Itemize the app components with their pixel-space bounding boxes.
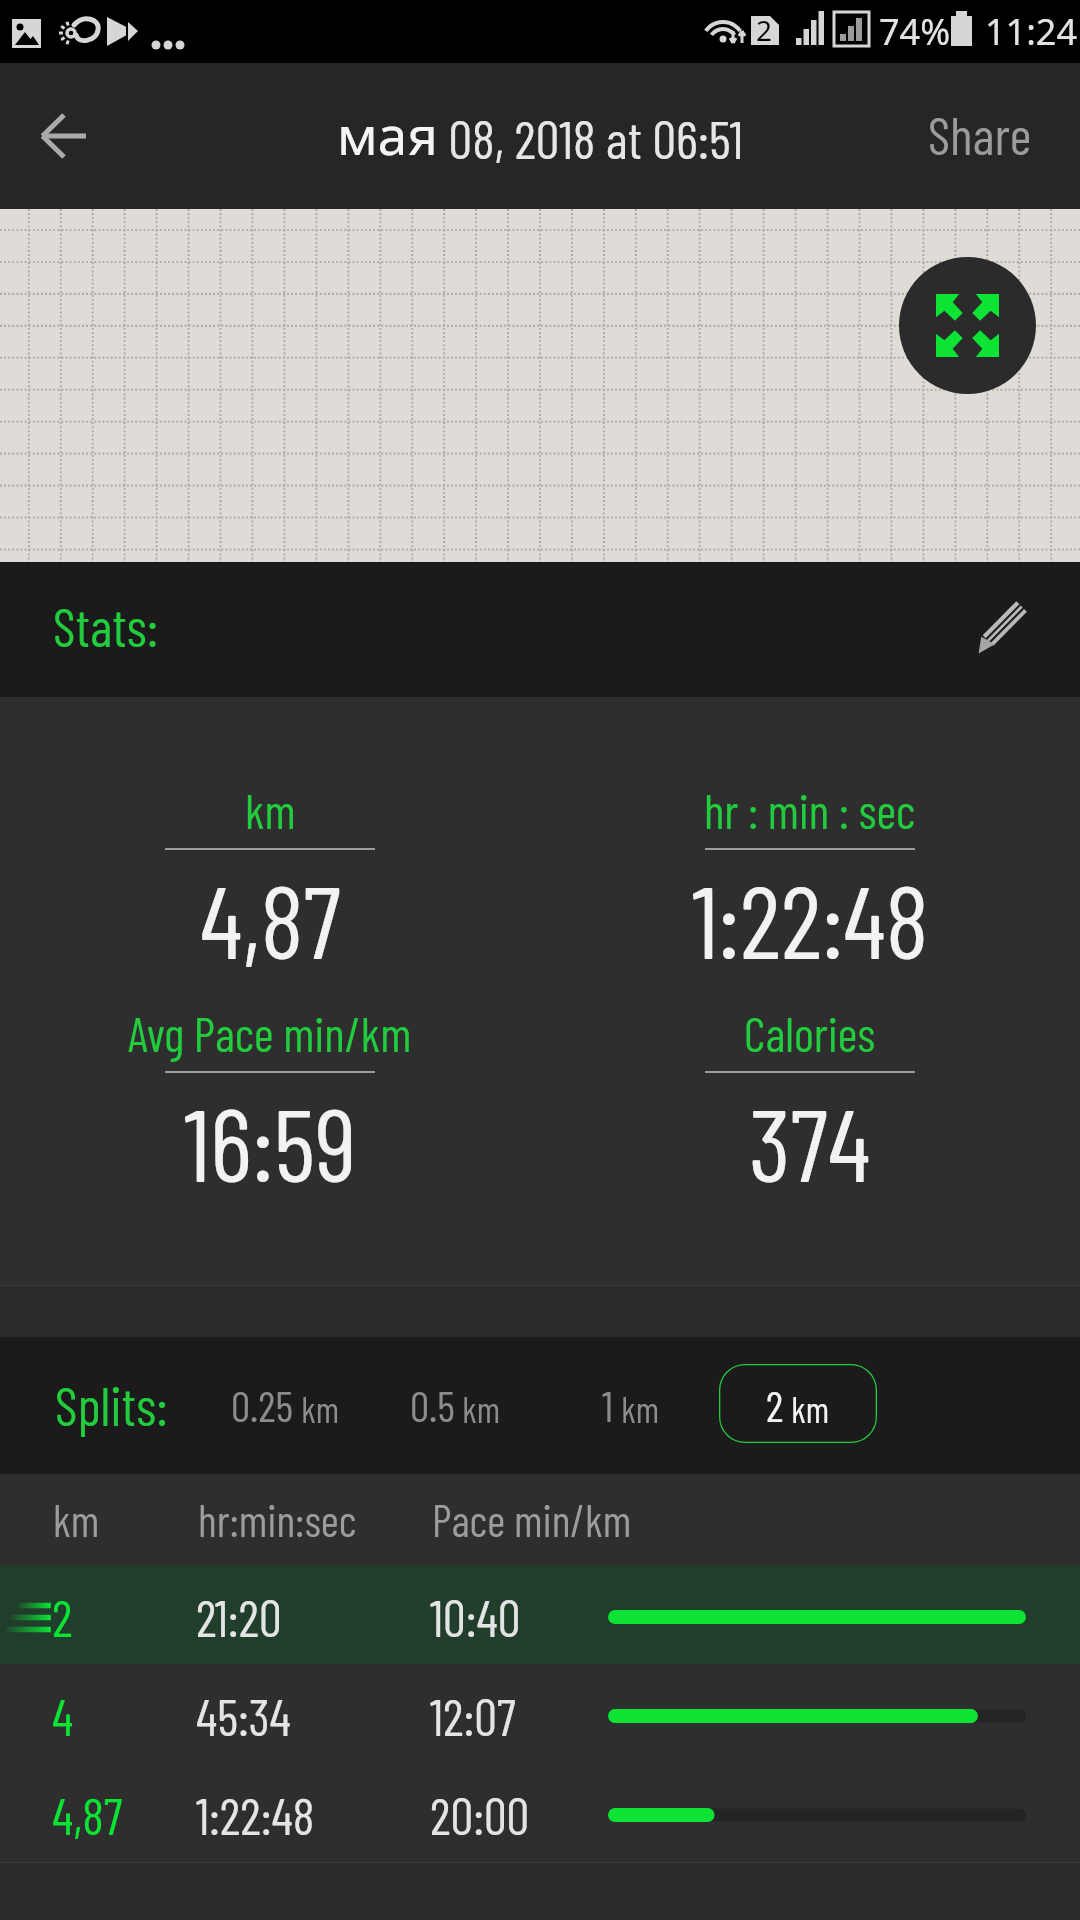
staticText: 2 (756, 11, 773, 49)
staticText: 45:34 (196, 1685, 291, 1746)
staticText: 16:59 (184, 1080, 357, 1202)
staticText: km (294, 1387, 340, 1430)
staticText: 20:00 (430, 1784, 530, 1845)
staticText: 4 (52, 1685, 74, 1746)
button[interactable]: 0.5 (406, 1364, 505, 1443)
staticText: km (245, 781, 296, 839)
staticText: 4,87 (52, 1784, 123, 1845)
staticText: 0.5 (410, 1379, 455, 1431)
button[interactable]: Share (888, 63, 1080, 209)
staticText: мая (337, 98, 438, 170)
staticText: km (455, 1387, 501, 1430)
staticText: 1:22:48 (196, 1784, 315, 1845)
staticText: km (53, 1493, 100, 1546)
staticText: hr:min:sec (198, 1493, 357, 1546)
staticText: Avg Pace min/km (128, 1004, 412, 1062)
staticText: 12:07 (430, 1685, 516, 1746)
staticText: Share (928, 102, 1032, 166)
button[interactable]: 4,87 (0, 1763, 1080, 1862)
staticText: 2 (52, 1586, 73, 1647)
button[interactable]: 2 (719, 1364, 877, 1443)
button[interactable]: Expand map to full screen (899, 257, 1036, 394)
staticText: 0.25 (231, 1379, 294, 1431)
button[interactable]: 2 (0, 1565, 1080, 1664)
staticText: km (614, 1387, 660, 1430)
staticText: hr : min : sec (704, 781, 916, 839)
staticText: 21:20 (196, 1586, 282, 1647)
button[interactable]: 1 (598, 1364, 664, 1443)
staticText: Splits: (55, 1372, 168, 1437)
button[interactable]: 4 (0, 1664, 1080, 1763)
button[interactable]: Edit stats (950, 562, 1080, 697)
staticText: Calories (744, 1004, 876, 1062)
staticText: km (784, 1387, 830, 1430)
staticText: Pace min/km (432, 1493, 632, 1546)
staticText: 74% (879, 7, 951, 56)
button[interactable]: Back (0, 72, 128, 200)
staticText: 11:24 (985, 7, 1078, 56)
staticText: 1:22:48 (692, 857, 929, 979)
staticText: 1 (602, 1379, 614, 1431)
staticText: 2 (766, 1379, 784, 1431)
staticText: Stats: (53, 593, 159, 658)
staticText: 4,87 (200, 857, 341, 979)
staticText: 10:40 (430, 1586, 521, 1647)
button[interactable]: 0.25 (227, 1364, 344, 1443)
staticText: 374 (749, 1080, 871, 1202)
staticText: 08, 2018 at 06:51 (438, 106, 744, 170)
